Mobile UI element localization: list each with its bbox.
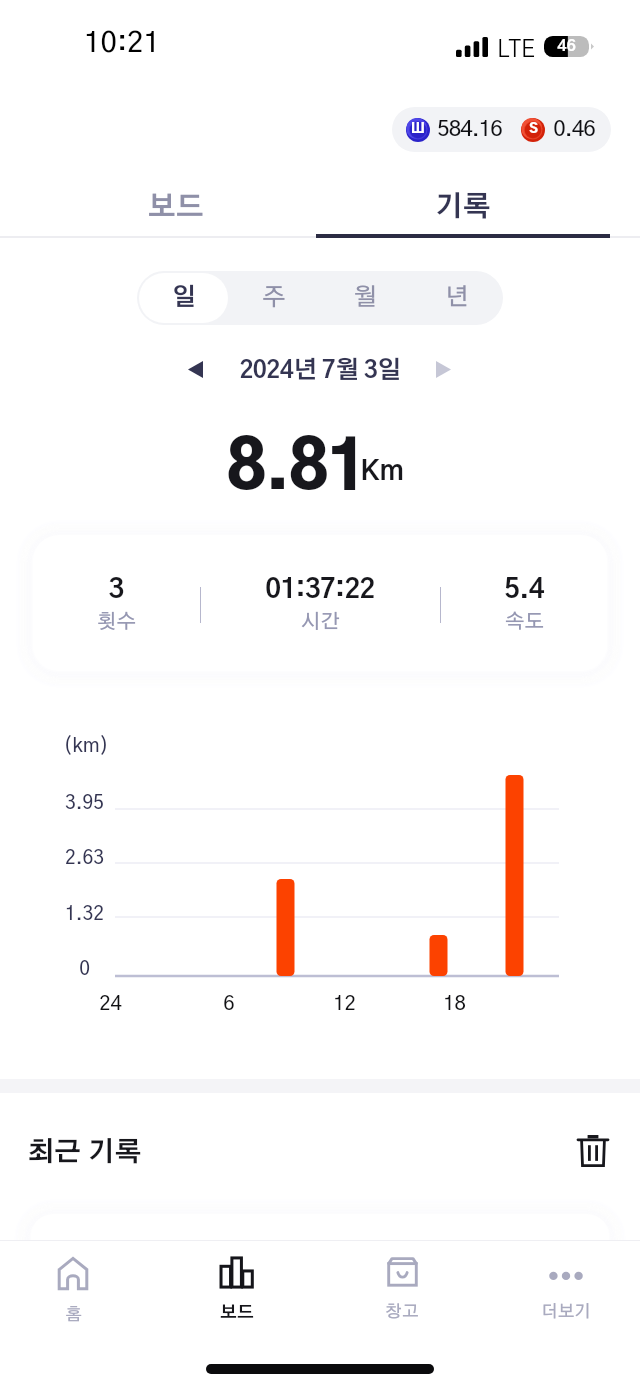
staticText: 년 [445, 286, 469, 310]
staticText: 1.32 [65, 905, 104, 924]
button[interactable]: 년 [411, 273, 503, 323]
staticText: 18 [443, 994, 466, 1014]
staticText: LTE [497, 39, 535, 62]
staticText: (km) [63, 736, 109, 756]
button[interactable]: Delete records [570, 1128, 616, 1174]
staticText: 주 [262, 286, 286, 310]
button[interactable] [33, 535, 607, 669]
staticText: 창고 [385, 1303, 419, 1320]
button[interactable]: 창고 [342, 1257, 462, 1332]
button[interactable]: Ш [392, 107, 611, 152]
staticText: 최근 기록 [27, 1139, 142, 1166]
staticText: 월 [353, 286, 377, 310]
staticText: 01:37:22 [265, 576, 375, 603]
staticText: 584.16 [437, 118, 502, 140]
staticText: 홈 [65, 1306, 82, 1323]
staticText: 24 [99, 994, 122, 1014]
button[interactable]: 보드 [177, 1257, 297, 1332]
staticText: S [529, 123, 538, 136]
staticText: Ш [411, 123, 425, 136]
staticText: 보드 [148, 194, 204, 222]
button[interactable]: 보드 [30, 178, 322, 237]
staticText: 횟수 [97, 612, 136, 632]
staticText: 더보기 [541, 1303, 591, 1320]
staticText: 3 [108, 576, 124, 603]
staticText: 5.4 [504, 576, 544, 603]
button[interactable]: Next day [421, 347, 465, 391]
button[interactable]: Previous day [173, 347, 217, 391]
staticText: 2024년 7월 3일 [239, 359, 401, 383]
staticText: 6 [223, 994, 235, 1014]
staticText: 속도 [505, 612, 544, 632]
staticText: Km [360, 458, 404, 486]
button[interactable]: 기록 [317, 178, 609, 237]
staticText: 8.81 [226, 436, 366, 502]
staticText: 12 [333, 994, 356, 1014]
staticText: 2.63 [65, 849, 104, 868]
staticText: 46 [557, 38, 576, 54]
staticText: 10:21 [84, 29, 160, 58]
button[interactable]: 홈 [13, 1257, 133, 1332]
staticText: 보드 [220, 1304, 254, 1321]
button[interactable]: 월 [319, 273, 411, 323]
staticText: 0.46 [553, 118, 595, 140]
button[interactable]: 일 [139, 273, 228, 323]
staticText: 시간 [301, 612, 340, 632]
staticText: 3.95 [65, 794, 104, 813]
staticText: 일 [172, 286, 196, 310]
staticText: 0 [79, 960, 90, 979]
button[interactable]: 주 [228, 273, 319, 323]
button[interactable]: 더보기 [506, 1257, 626, 1332]
staticText: 기록 [435, 194, 491, 222]
